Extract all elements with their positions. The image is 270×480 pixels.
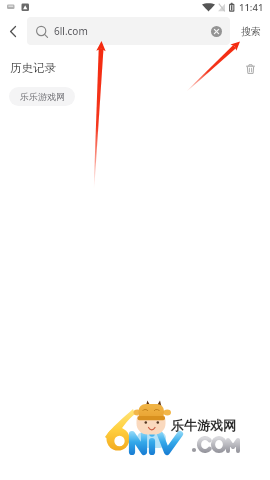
staticText: 11:41 (239, 1, 264, 14)
staticText: 历史记录 (10, 61, 56, 75)
button[interactable]: Back (0, 17, 26, 45)
button[interactable]: Clear text (206, 21, 226, 41)
button[interactable]: 搜索 (232, 17, 270, 45)
staticText: 搜索 (241, 25, 261, 38)
button[interactable]: Clear history (240, 59, 260, 79)
staticText: 6ll.com (54, 24, 88, 38)
staticText: 乐乐游戏网 (20, 91, 65, 102)
button[interactable]: 6ll.com (27, 17, 230, 45)
staticText: 乐牛游戏网 (171, 417, 236, 433)
button[interactable]: 乐乐游戏网 (9, 87, 75, 106)
